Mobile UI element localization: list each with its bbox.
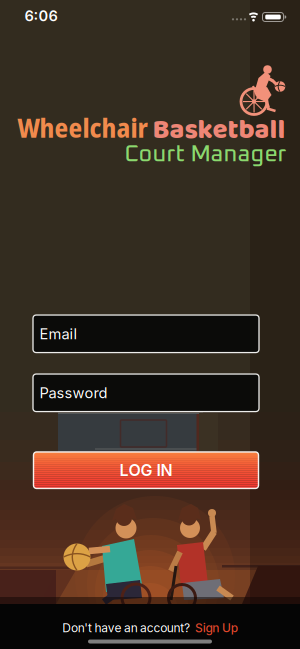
staticText: 6:06 [24,7,57,25]
staticText: Don't have an account? [62,621,190,635]
staticText: Sign Up [195,621,238,635]
button[interactable]: Email [33,315,259,353]
staticText: Email [39,325,77,343]
staticText: Password [39,384,107,402]
staticText: LOG IN [119,460,172,480]
staticText: Court Manager [124,143,286,166]
button[interactable]: LOG IN [33,452,258,488]
staticText: Wheelchair [17,109,147,146]
button[interactable]: Password [33,374,259,412]
button[interactable]: Sign Up [195,621,238,635]
staticText: Basketball [152,109,285,152]
